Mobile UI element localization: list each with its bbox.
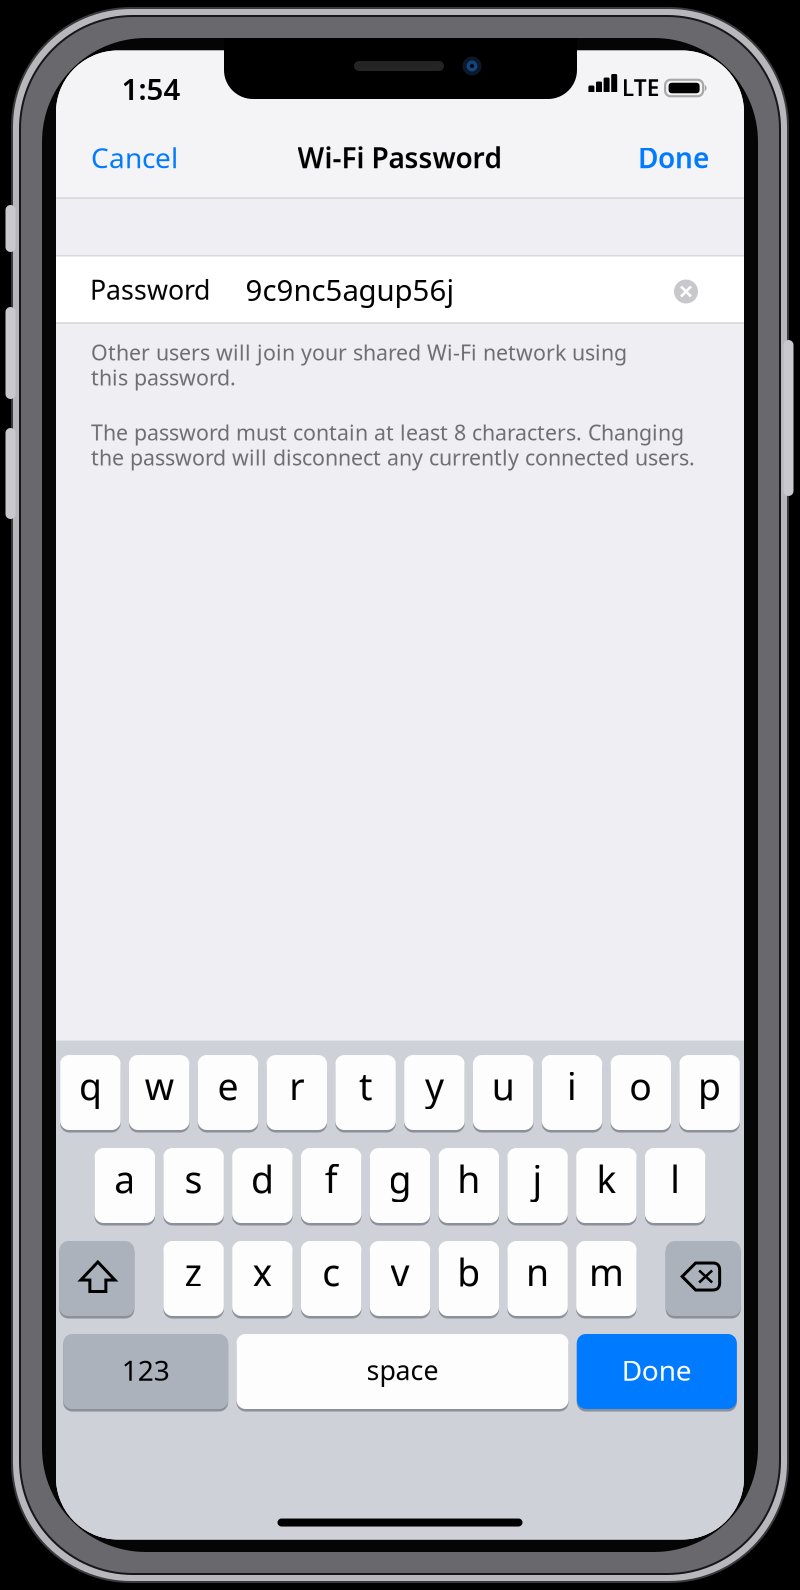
staticText: k xyxy=(596,1154,616,1204)
staticText: g xyxy=(388,1154,411,1204)
staticText: b xyxy=(457,1247,480,1297)
staticText: c xyxy=(322,1247,340,1297)
button[interactable]: n xyxy=(507,1239,568,1317)
staticText: f xyxy=(325,1154,338,1204)
button[interactable]: v xyxy=(370,1239,430,1317)
button[interactable]: r xyxy=(266,1053,327,1131)
staticText: q xyxy=(79,1061,102,1111)
button[interactable]: c xyxy=(301,1239,361,1317)
button[interactable]: 123 xyxy=(63,1332,228,1410)
staticText: e xyxy=(217,1061,238,1111)
staticText: t xyxy=(359,1061,372,1111)
button[interactable]: Done xyxy=(577,1332,737,1410)
staticText: h xyxy=(457,1154,480,1204)
staticText: Password xyxy=(90,272,210,307)
button[interactable]: l xyxy=(645,1146,705,1224)
staticText: LTE xyxy=(622,72,660,102)
button[interactable]: h xyxy=(439,1146,499,1224)
button[interactable]: g xyxy=(370,1146,430,1224)
staticText: space xyxy=(366,1352,438,1388)
button[interactable]: Clear text xyxy=(660,265,712,317)
staticText: 1:54 xyxy=(121,69,180,108)
button[interactable]: u xyxy=(473,1053,533,1131)
button[interactable]: m xyxy=(576,1239,637,1317)
staticText: i xyxy=(567,1061,577,1111)
button[interactable]: Delete xyxy=(666,1239,741,1317)
staticText: The password must contain at least 8 cha… xyxy=(91,418,684,446)
staticText: Done xyxy=(622,1351,692,1389)
button[interactable]: q xyxy=(60,1053,121,1131)
staticText: o xyxy=(629,1061,652,1111)
button[interactable]: k xyxy=(576,1146,637,1224)
button[interactable]: p xyxy=(679,1053,740,1131)
button[interactable]: x xyxy=(232,1239,293,1317)
button[interactable]: Cancel xyxy=(91,117,178,197)
staticText: Wi-Fi Password xyxy=(297,139,502,176)
staticText: w xyxy=(145,1061,174,1111)
staticText: y xyxy=(425,1061,444,1111)
staticText: 9c9nc5agup56j xyxy=(245,270,454,309)
button[interactable]: z xyxy=(163,1239,224,1317)
button[interactable]: t xyxy=(335,1053,396,1131)
button[interactable]: o xyxy=(610,1053,671,1131)
staticText: s xyxy=(185,1154,203,1204)
staticText: Other users will join your shared Wi-Fi … xyxy=(91,338,627,366)
staticText: a xyxy=(114,1154,135,1204)
staticText: j xyxy=(533,1154,543,1204)
button[interactable]: space xyxy=(236,1332,568,1410)
button[interactable]: i xyxy=(542,1053,602,1131)
button[interactable]: a xyxy=(95,1146,155,1224)
staticText: Cancel xyxy=(91,139,178,176)
button[interactable]: j xyxy=(507,1146,568,1224)
button[interactable]: f xyxy=(301,1146,361,1224)
staticText: n xyxy=(526,1247,549,1297)
staticText: p xyxy=(698,1061,721,1111)
button[interactable]: d xyxy=(232,1146,293,1224)
button[interactable]: Shift xyxy=(59,1239,134,1317)
staticText: the password will disconnect any current… xyxy=(91,443,695,471)
staticText: v xyxy=(390,1247,409,1297)
button[interactable]: e xyxy=(198,1053,258,1131)
button[interactable]: Done xyxy=(638,117,709,197)
staticText: 123 xyxy=(122,1351,170,1389)
staticText: Done xyxy=(638,139,709,176)
staticText: this password. xyxy=(91,363,236,391)
button[interactable]: w xyxy=(129,1053,189,1131)
button[interactable]: y xyxy=(404,1053,465,1131)
button[interactable]: b xyxy=(439,1239,499,1317)
staticText: l xyxy=(670,1154,680,1204)
button[interactable]: s xyxy=(163,1146,224,1224)
staticText: u xyxy=(492,1061,515,1111)
staticText: d xyxy=(251,1154,274,1204)
staticText: x xyxy=(252,1247,272,1297)
staticText: r xyxy=(289,1061,304,1111)
staticText: z xyxy=(185,1247,203,1297)
staticText: m xyxy=(589,1247,624,1297)
